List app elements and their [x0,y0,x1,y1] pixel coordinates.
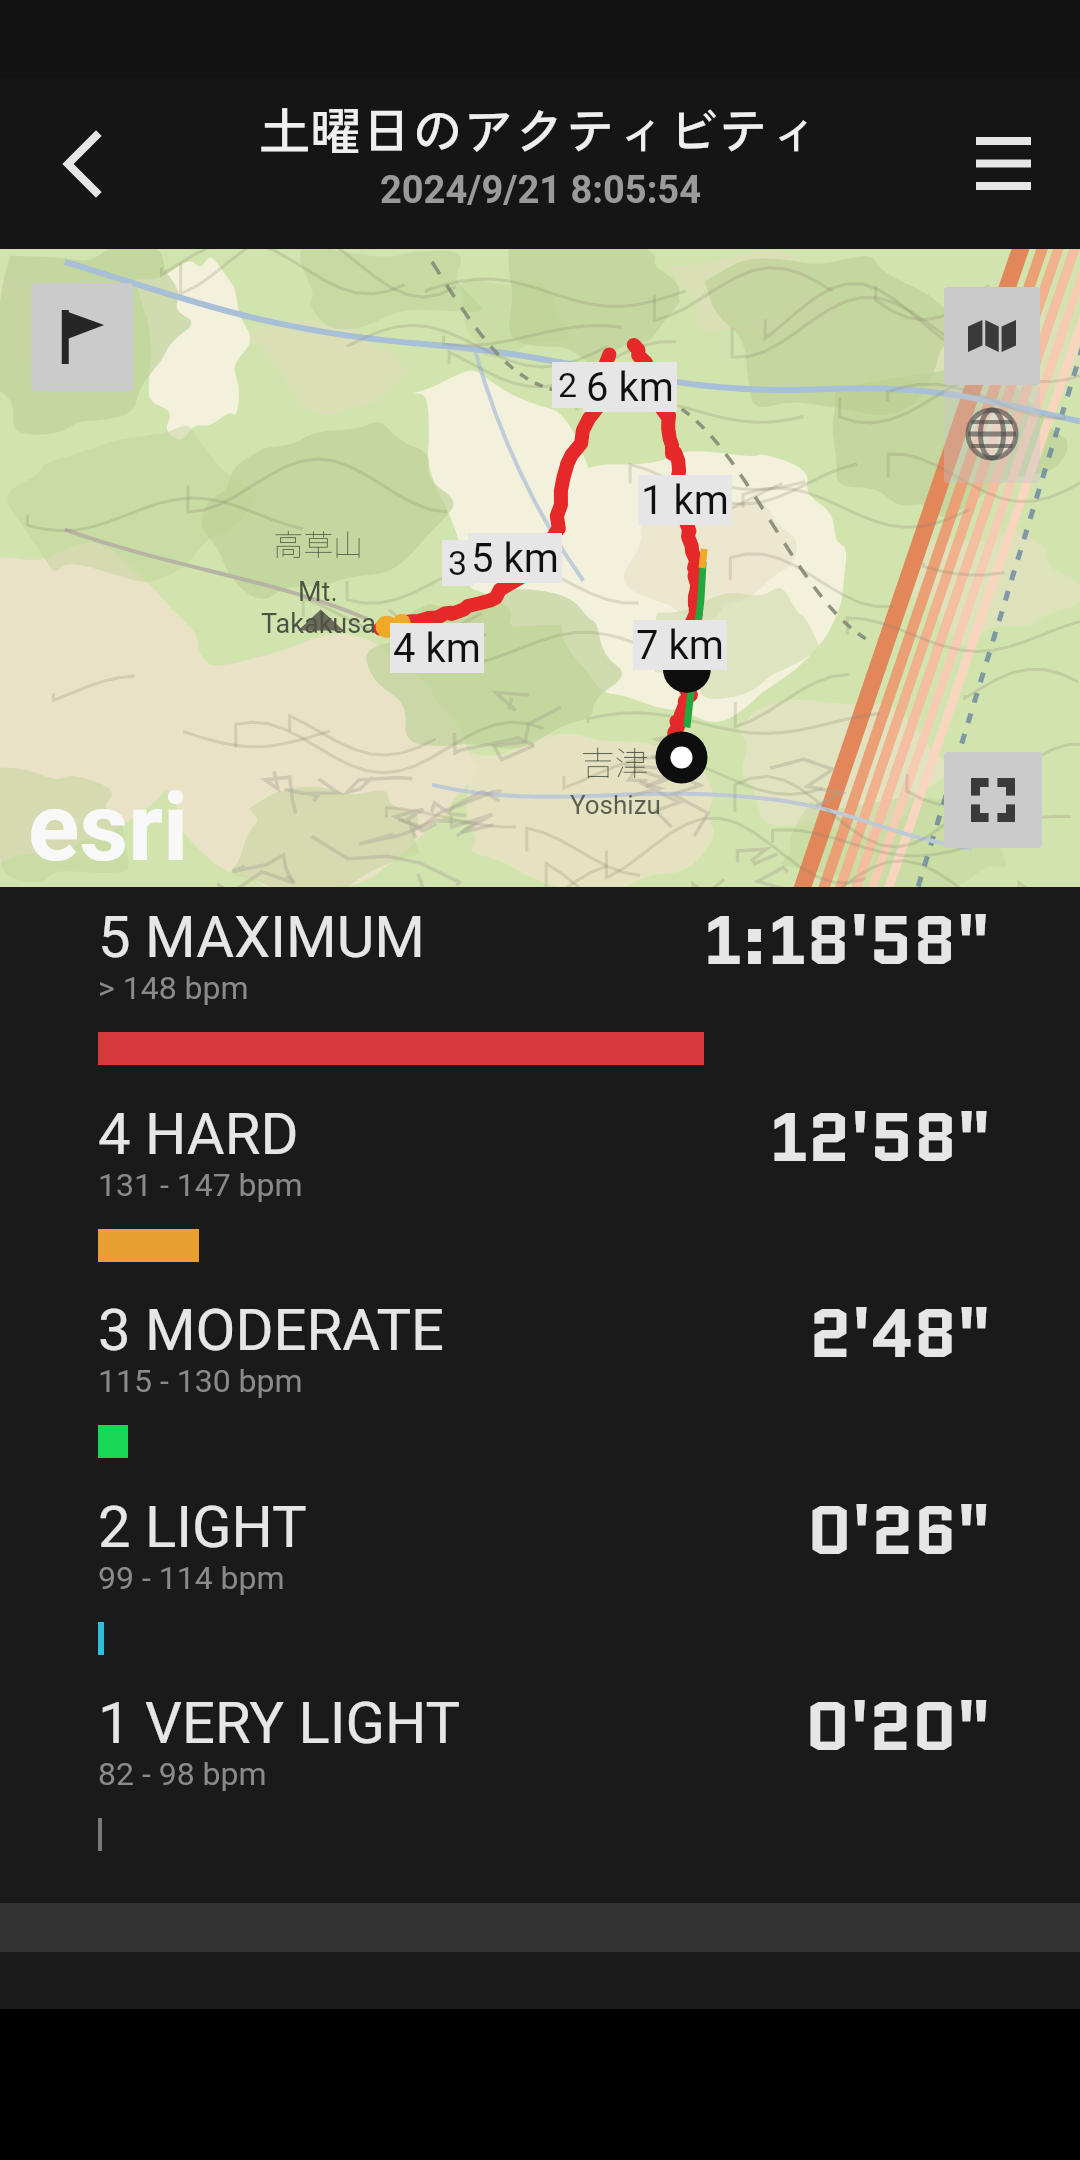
button[interactable]: Menu [926,78,1080,249]
staticText: 12'58" [769,1090,991,1186]
staticText: 1:18'58" [703,893,991,989]
staticText: 99 - 114 bpm [98,1559,285,1597]
staticText: 2'48" [809,1286,991,1382]
button[interactable]: 3 MODERATE [0,1280,1080,1476]
staticText: 2024/9/21 8:05:54 [380,168,701,213]
staticText: 高草山 [273,521,363,564]
staticText: 3 MODERATE [98,1296,445,1364]
button[interactable]: 4 HARD [0,1084,1080,1280]
button[interactable]: Satellite view [944,385,1040,483]
staticText: 1 km [641,477,729,524]
button[interactable]: Waypoints [31,283,133,391]
staticText: 0'26" [807,1483,991,1579]
staticText: 2 LIGHT [98,1493,307,1561]
staticText: 5 MAXIMUM [98,903,425,971]
staticText: Takakusa [261,608,376,640]
button[interactable]: 1 VERY LIGHT [0,1673,1080,1869]
staticText: 5 km [471,535,559,582]
staticText: 131 - 147 bpm [98,1166,303,1204]
staticText: 4 km [393,625,481,672]
button[interactable]: 5 MAXIMUM [0,887,1080,1083]
staticText: 2 [558,365,578,405]
staticText: Mt. [298,576,338,608]
staticText: 6 km [586,364,674,411]
staticText: 7 km [636,622,724,669]
staticText: > 148 bpm [98,969,249,1007]
staticText: 3 [448,543,468,583]
button[interactable]: Map type [944,287,1040,385]
staticText: 土曜日のアクティビティ [259,91,821,165]
staticText: esri [28,772,189,883]
staticText: Yoshizu [570,790,661,820]
staticText: 82 - 98 bpm [98,1755,267,1793]
staticText: 0'20" [805,1679,991,1775]
staticText: 4 HARD [98,1100,299,1168]
button[interactable]: Back [0,78,163,249]
button[interactable]: 2 LIGHT [0,1477,1080,1673]
staticText: 1 VERY LIGHT [98,1689,461,1757]
button[interactable]: Fullscreen [944,752,1042,848]
staticText: 115 - 130 bpm [98,1362,303,1400]
staticText: 吉津 [581,737,649,786]
